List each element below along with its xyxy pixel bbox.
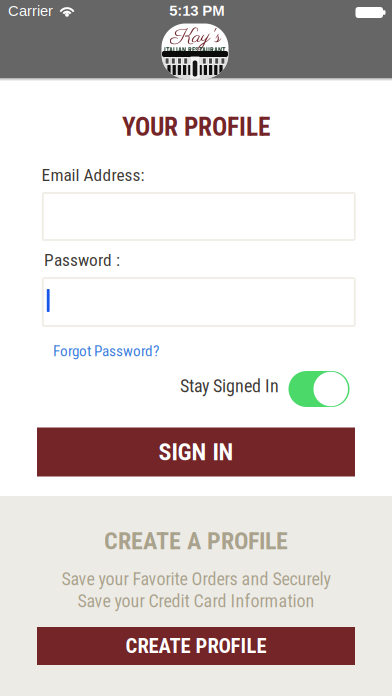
staticText: SIGN IN (158, 438, 233, 466)
button[interactable]: SIGN IN (37, 427, 355, 476)
staticText: Forgot Password? (53, 342, 159, 360)
button[interactable]: Stay Signed In (288, 371, 349, 407)
button[interactable]: Forgot Password? (46, 339, 166, 363)
staticText: Save your Favorite Orders and Securely (61, 568, 330, 590)
staticText: Save your Credit Card Information (77, 590, 314, 612)
staticText: CREATE A PROFILE (104, 527, 288, 555)
staticText: Stay Signed In (180, 375, 279, 397)
staticText: CREATE PROFILE (125, 634, 266, 658)
staticText: Kay's (170, 24, 220, 51)
staticText: Email Address: (41, 165, 144, 185)
staticText: Carrier (8, 3, 53, 19)
staticText: ITALIAN RESTAURANT (164, 46, 226, 54)
button[interactable]: CREATE PROFILE (37, 627, 355, 665)
staticText: 5:13 PM (169, 2, 224, 19)
staticText: YOUR PROFILE (122, 112, 270, 142)
staticText: Password : (44, 250, 120, 270)
